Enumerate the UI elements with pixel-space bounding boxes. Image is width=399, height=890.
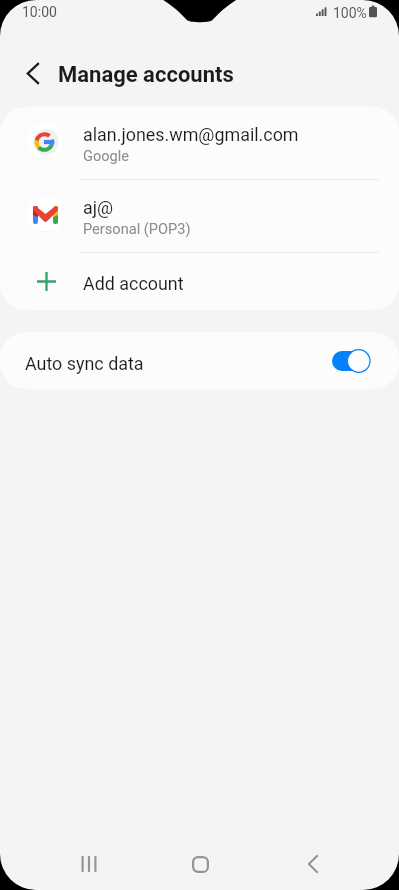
button[interactable]: Recent apps — [65, 840, 113, 888]
staticText: aj@ — [83, 197, 114, 218]
staticText: Personal (POP3) — [83, 220, 191, 237]
staticText: 10:00 — [22, 4, 57, 20]
button[interactable]: Add account — [0, 253, 399, 310]
staticText: alan.jones.wm@gmail.com — [83, 124, 299, 145]
staticText: Auto sync data — [25, 353, 144, 374]
staticText: Manage accounts — [58, 62, 234, 88]
button[interactable]: alan.jones.wm@gmail.com — [0, 107, 399, 179]
staticText: Google — [83, 147, 130, 164]
button[interactable]: Home — [176, 840, 224, 888]
button[interactable]: aj@ — [0, 180, 399, 252]
staticText: Add account — [83, 273, 184, 294]
staticText: 100% — [333, 5, 367, 21]
button[interactable]: Navigate up — [12, 53, 53, 94]
button[interactable]: Auto sync data — [0, 332, 399, 389]
button[interactable]: Back — [288, 840, 336, 888]
